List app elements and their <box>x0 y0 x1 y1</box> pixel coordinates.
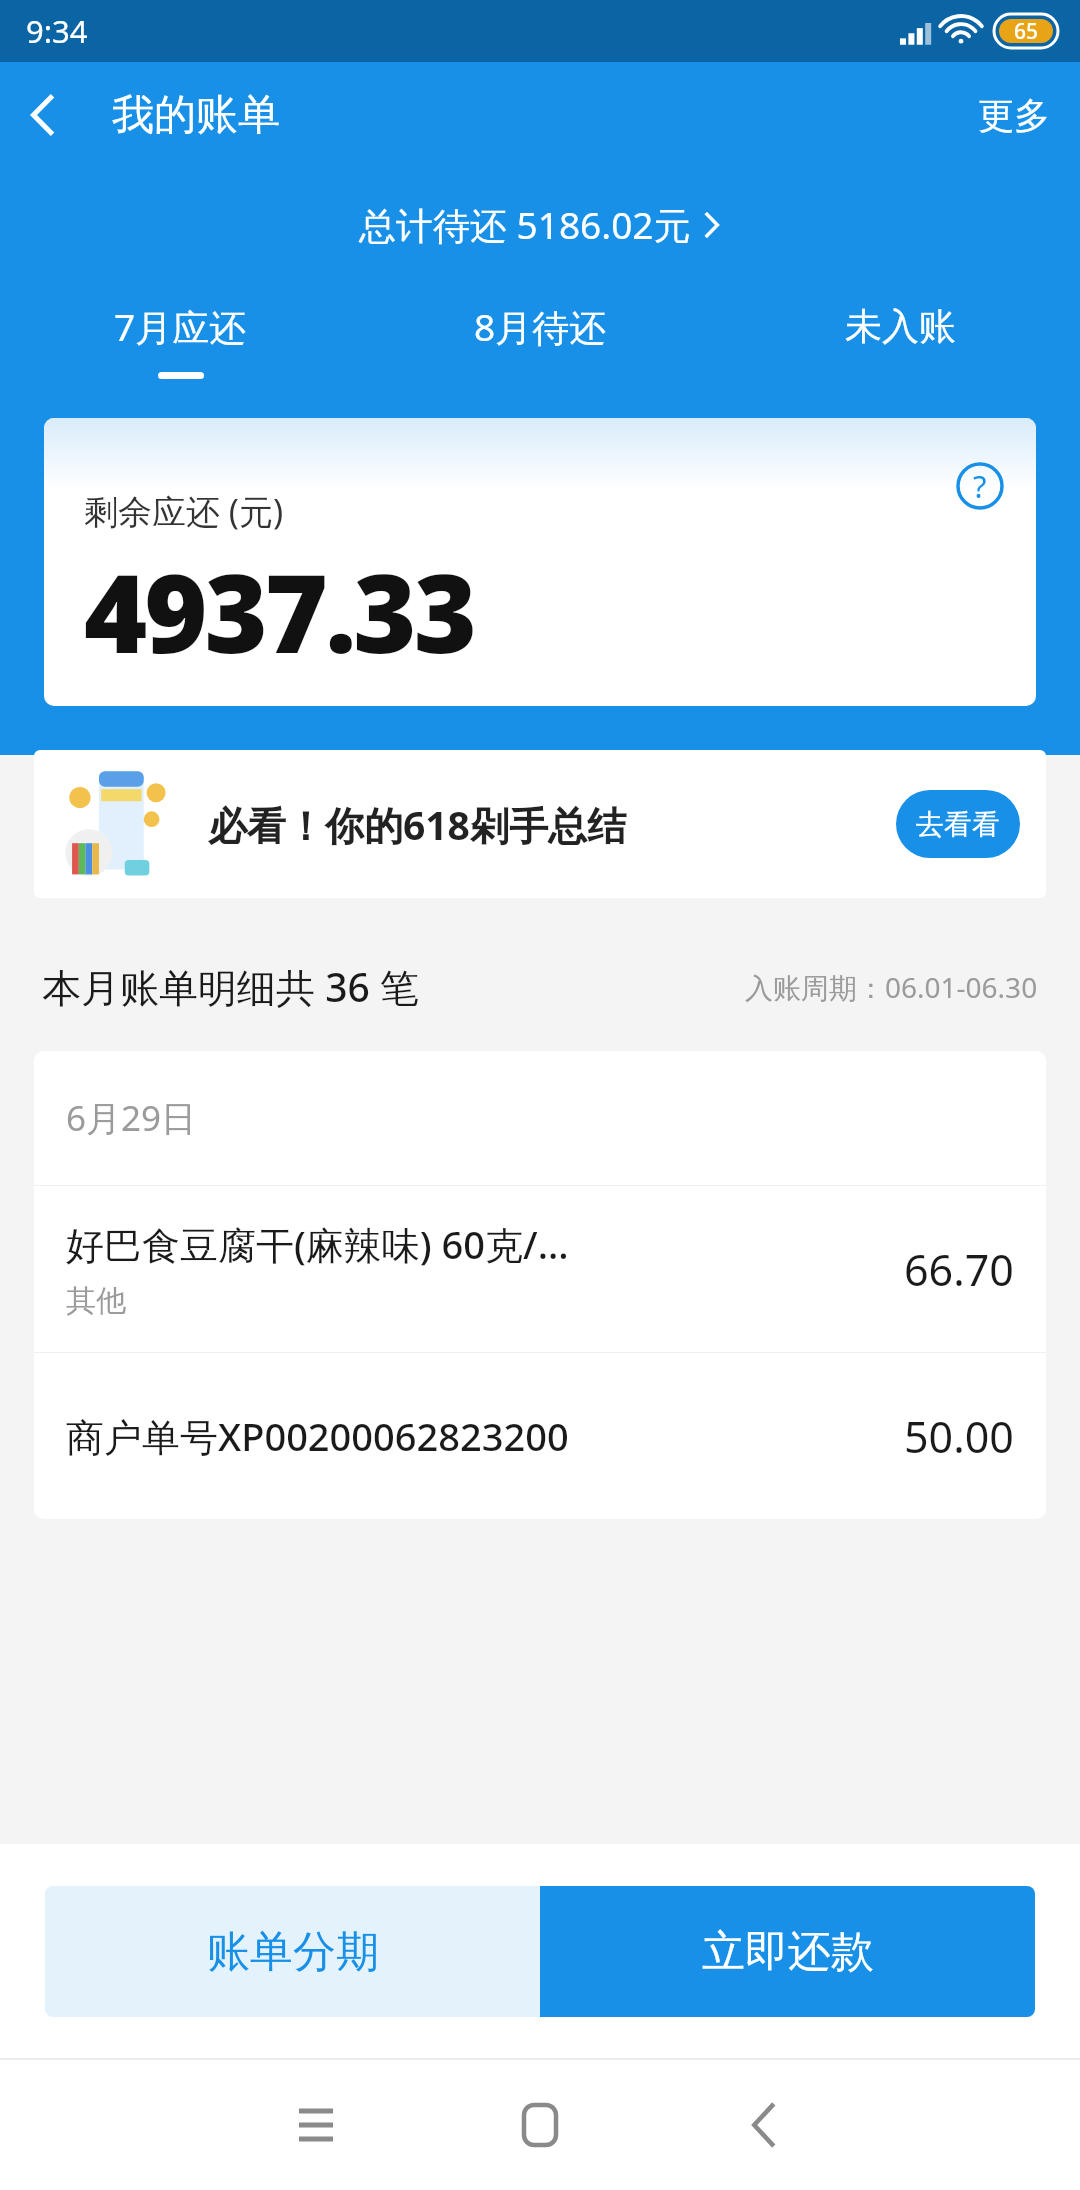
button[interactable]: 去看看 <box>896 790 1020 858</box>
button[interactable]: 6月29日 <box>34 1051 1046 1185</box>
staticText: 9:34 <box>26 10 88 52</box>
staticText: 4937.33 <box>84 538 474 685</box>
button[interactable]: 商户单号XP00200062823200 <box>34 1353 1046 1519</box>
staticText: 账单分期 <box>207 1925 379 1979</box>
staticText: 剩余应还 (元) <box>84 488 284 534</box>
staticText: 8月待还 <box>474 301 607 352</box>
staticText: 50.00 <box>904 1407 1014 1466</box>
staticText: 去看看 <box>916 807 1000 842</box>
button[interactable]: 剩余应还 (元) <box>44 418 1036 706</box>
staticText: 66.70 <box>904 1240 1014 1299</box>
button[interactable]: Home <box>484 2069 596 2181</box>
staticText: 65 <box>1014 17 1039 46</box>
button[interactable]: 必看！你的618剁手总结 <box>34 750 1046 898</box>
button[interactable]: 总计待还 5186.02元 <box>335 183 745 266</box>
staticText: 本月账单明细共 36 笔 <box>42 960 419 1013</box>
button[interactable]: Back <box>0 73 76 157</box>
staticText: 好巴食豆腐干(麻辣味) 60克/... <box>66 1218 569 1270</box>
staticText: 立即还款 <box>702 1925 874 1979</box>
staticText: 6月29日 <box>66 1094 197 1142</box>
staticText: 入账周期：06.01-06.30 <box>745 968 1038 1006</box>
button[interactable]: Back <box>708 2069 820 2181</box>
staticText: 商户单号XP00200062823200 <box>66 1410 569 1462</box>
staticText: 更多 <box>978 93 1050 138</box>
button[interactable]: 立即还款 <box>540 1886 1035 2017</box>
button[interactable]: 帮助 <box>952 458 1008 514</box>
button[interactable]: 未入账 <box>720 280 1080 400</box>
staticText: 我的账单 <box>112 89 280 142</box>
staticText: 必看！你的618剁手总结 <box>208 798 896 851</box>
staticText: 总计待还 5186.02元 <box>359 199 691 250</box>
button[interactable]: 更多 <box>948 73 1080 158</box>
staticText: 未入账 <box>845 303 956 350</box>
button[interactable]: 好巴食豆腐干(麻辣味) 60克/... <box>34 1186 1046 1352</box>
button[interactable]: 7月应还 <box>0 280 360 400</box>
staticText: ? <box>973 465 987 507</box>
button[interactable]: 8月待还 <box>360 280 720 400</box>
button[interactable]: 账单分期 <box>45 1886 540 2017</box>
staticText: 其他 <box>66 1282 126 1320</box>
button[interactable]: Recents <box>260 2069 372 2181</box>
staticText: 7月应还 <box>114 301 247 352</box>
